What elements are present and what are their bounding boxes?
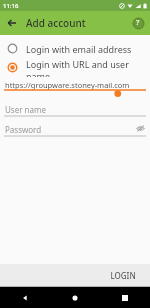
button[interactable]: User name [0,103,150,119]
button[interactable]: Login with email address [0,39,150,58]
button[interactable]: Recent apps [100,287,150,308]
staticText: https://groupware.stoney-mail.com [5,80,130,90]
button[interactable]: Back [0,287,50,308]
button[interactable]: LOGIN [104,266,142,285]
staticText: User name [5,104,46,115]
staticText: ? [136,18,140,28]
staticText: Password [5,124,42,135]
button[interactable]: Home [50,287,100,308]
staticText: 11:16 [3,2,19,10]
staticText: Add account [26,16,86,30]
button[interactable]: Help [128,13,148,33]
button[interactable]: Show password [135,123,146,134]
button[interactable]: Login with URL and user name [0,58,150,77]
button[interactable]: Password [0,123,150,139]
button[interactable]: https://groupware.stoney-mail.com [0,79,150,97]
staticText: Login with URL and user name [26,58,150,77]
staticText: Login with email address [26,43,132,55]
button[interactable]: Back [2,13,22,33]
staticText: LOGIN [110,270,136,281]
